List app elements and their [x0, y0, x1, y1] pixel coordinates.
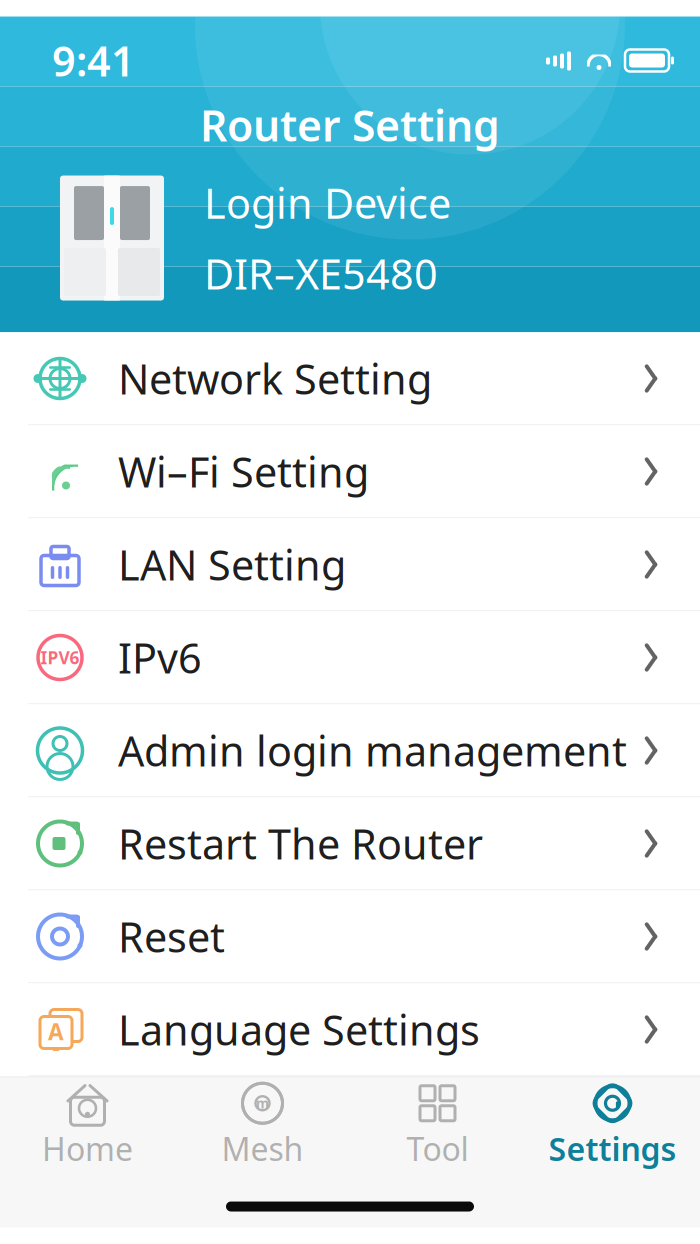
staticText: Settings — [548, 1127, 676, 1170]
staticText: Login Device — [204, 175, 451, 230]
staticText: Tool — [406, 1127, 468, 1170]
staticText: Restart The Router — [118, 816, 483, 871]
staticText: DIR–XE5480 — [204, 246, 438, 301]
staticText: Home — [42, 1127, 133, 1170]
button[interactable]: Reset — [0, 890, 700, 983]
staticText: 9:41 — [52, 33, 135, 88]
button[interactable]: m — [175, 1077, 350, 1173]
button[interactable]: Tool — [350, 1077, 525, 1173]
staticText: Wi–Fi Setting — [118, 444, 369, 499]
button[interactable]: Settings — [525, 1077, 700, 1173]
staticText: Mesh — [221, 1127, 303, 1170]
button[interactable]: IPV6 — [0, 611, 700, 704]
staticText: Reset — [118, 909, 225, 964]
button[interactable]: LAN Setting — [0, 518, 700, 611]
staticText: Language Settings — [118, 1002, 480, 1057]
button[interactable]: Wi–Fi Setting — [0, 425, 700, 518]
staticText: m — [256, 1094, 269, 1112]
button[interactable]: Admin login management — [0, 704, 700, 797]
staticText: Admin login management — [118, 723, 627, 778]
staticText: Network Setting — [118, 351, 432, 406]
button[interactable]: Network Setting — [0, 332, 700, 425]
button[interactable]: Restart The Router — [0, 797, 700, 890]
staticText: Router Setting — [200, 96, 500, 153]
staticText: IPV6 — [40, 646, 79, 669]
button[interactable]: A — [0, 983, 700, 1076]
staticText: A — [48, 1016, 64, 1046]
staticText: IPv6 — [118, 630, 202, 685]
button[interactable]: Home — [0, 1077, 175, 1173]
staticText: LAN Setting — [118, 537, 346, 592]
